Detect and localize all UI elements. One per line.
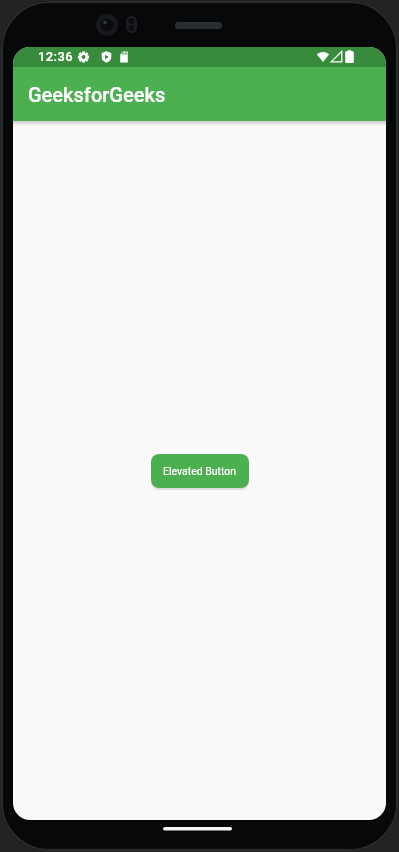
staticText: Elevated Button (163, 465, 237, 477)
button[interactable]: Elevated Button (151, 454, 249, 488)
button[interactable]: GeeksforGeeks (13, 67, 386, 121)
staticText: 12:36 (38, 49, 74, 64)
staticText: GeeksforGeeks (28, 83, 166, 106)
